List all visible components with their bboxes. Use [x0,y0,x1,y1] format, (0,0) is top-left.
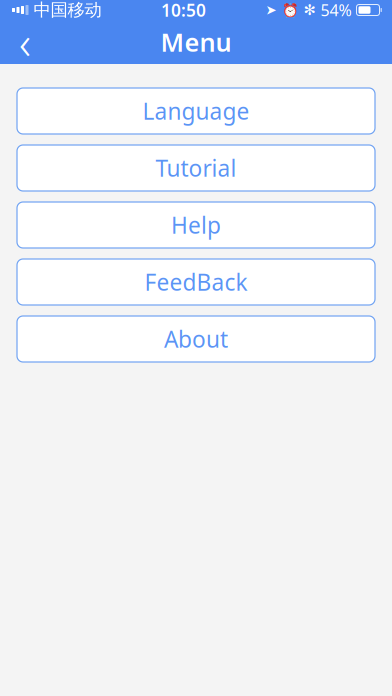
staticText: ➤ [265,2,276,17]
staticText: 10:50 [161,0,206,21]
staticText: 中国移动 [33,0,101,21]
staticText: Language [142,96,249,126]
button[interactable]: Language [17,88,375,134]
button[interactable]: Help [17,202,375,248]
staticText: ✻ [303,2,315,18]
staticText: ‹ [19,12,31,72]
button[interactable]: FeedBack [17,259,375,305]
staticText: Help [171,210,221,240]
button[interactable]: Tutorial [17,145,375,191]
staticText: Tutorial [155,153,236,183]
staticText: ⏰ [281,2,298,18]
staticText: About [164,324,228,354]
button[interactable]: Back [0,20,50,64]
staticText: Menu [160,25,231,59]
staticText: FeedBack [144,267,247,297]
staticText: 54% [320,0,351,21]
button[interactable]: About [17,316,375,362]
